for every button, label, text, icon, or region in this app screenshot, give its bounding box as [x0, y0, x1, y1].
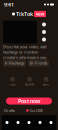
staticText: NEW: [35, 11, 44, 17]
button[interactable]: TikTok: [12, 10, 46, 18]
staticText: @ Friends: [29, 60, 47, 66]
staticText: Describe your video, add hashtags or men…: [3, 44, 46, 60]
button[interactable]: @ Friends: [28, 59, 49, 67]
staticText: TikTok: [16, 10, 33, 18]
button[interactable]: Drafts: [4, 108, 15, 113]
button[interactable]: Go LIVE: [26, 108, 43, 113]
staticText: 9:41: [4, 1, 14, 8]
staticText: Drafts: [4, 108, 15, 113]
staticText: Go LIVE: [30, 108, 43, 113]
button[interactable]: Post now: [6, 97, 52, 104]
button[interactable]: Cover: [8, 77, 16, 86]
staticText: Cover: [8, 83, 16, 86]
button[interactable]: More: [42, 77, 49, 86]
staticText: # Hashtags: [4, 60, 24, 66]
button[interactable]: Sound: [25, 77, 34, 86]
staticText: Sound: [25, 83, 34, 86]
button[interactable]: # Hashtags: [3, 59, 26, 67]
staticText: Post now: [18, 97, 40, 105]
staticText: More: [42, 83, 49, 86]
